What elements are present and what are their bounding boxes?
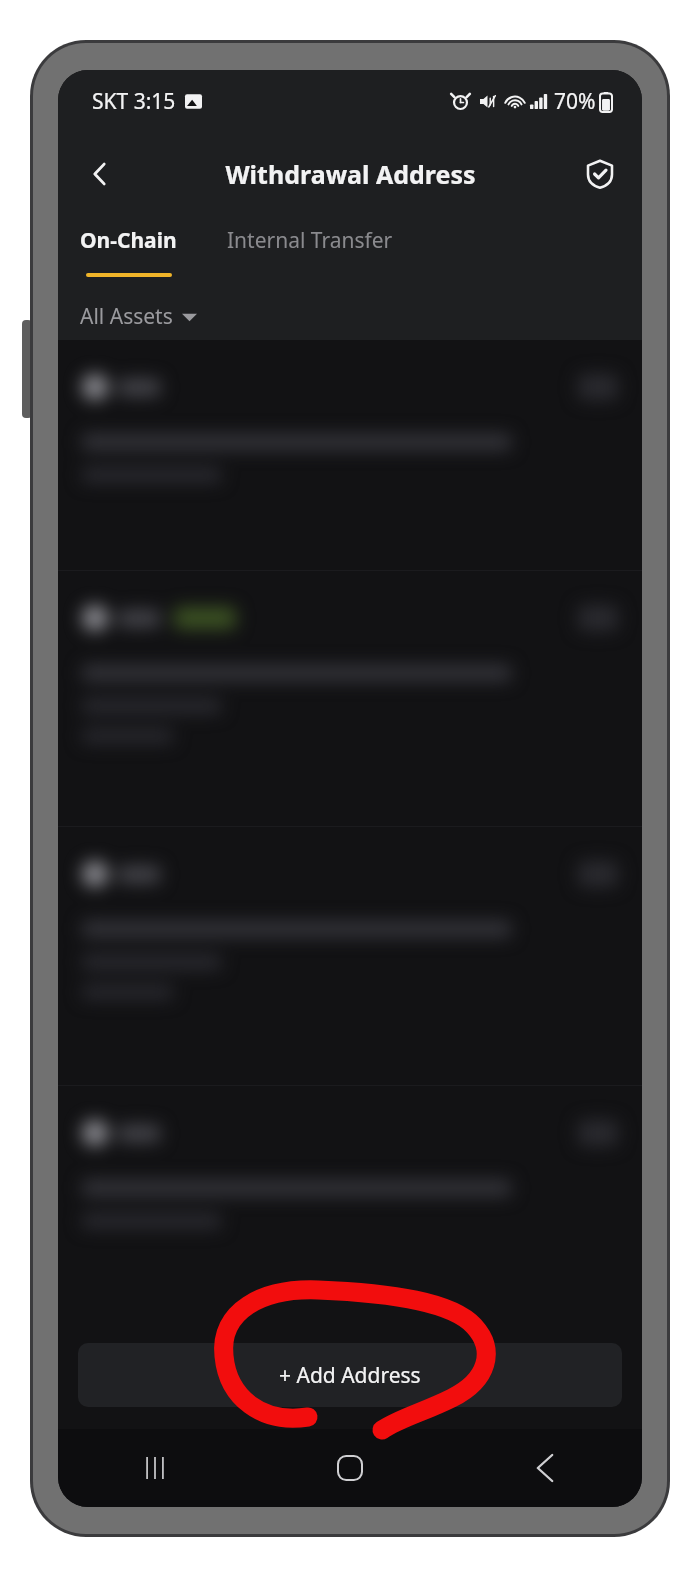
staticText: 70% xyxy=(554,87,596,116)
button[interactable]: All Assets xyxy=(78,296,199,337)
staticText: All Assets xyxy=(80,302,173,331)
button[interactable]: Back xyxy=(447,1429,642,1507)
button[interactable]: Recent apps xyxy=(58,1429,252,1507)
button[interactable]: Internal Transfer xyxy=(225,216,395,265)
button[interactable] xyxy=(58,571,642,826)
button[interactable] xyxy=(58,1086,642,1286)
staticText: Withdrawal Address xyxy=(225,157,476,191)
staticText: SKT 3:15 xyxy=(92,87,176,116)
staticText: Internal Transfer xyxy=(227,226,393,255)
button[interactable]: Security xyxy=(572,146,628,202)
staticText: + Add Address xyxy=(279,1361,421,1390)
staticText: On-Chain xyxy=(80,226,177,255)
button[interactable]: On-Chain xyxy=(78,216,179,277)
button[interactable] xyxy=(58,827,642,1085)
button[interactable]: Home xyxy=(252,1429,447,1507)
button[interactable] xyxy=(58,340,642,570)
button[interactable]: Back xyxy=(72,146,128,202)
button[interactable]: + Add Address xyxy=(78,1343,622,1407)
